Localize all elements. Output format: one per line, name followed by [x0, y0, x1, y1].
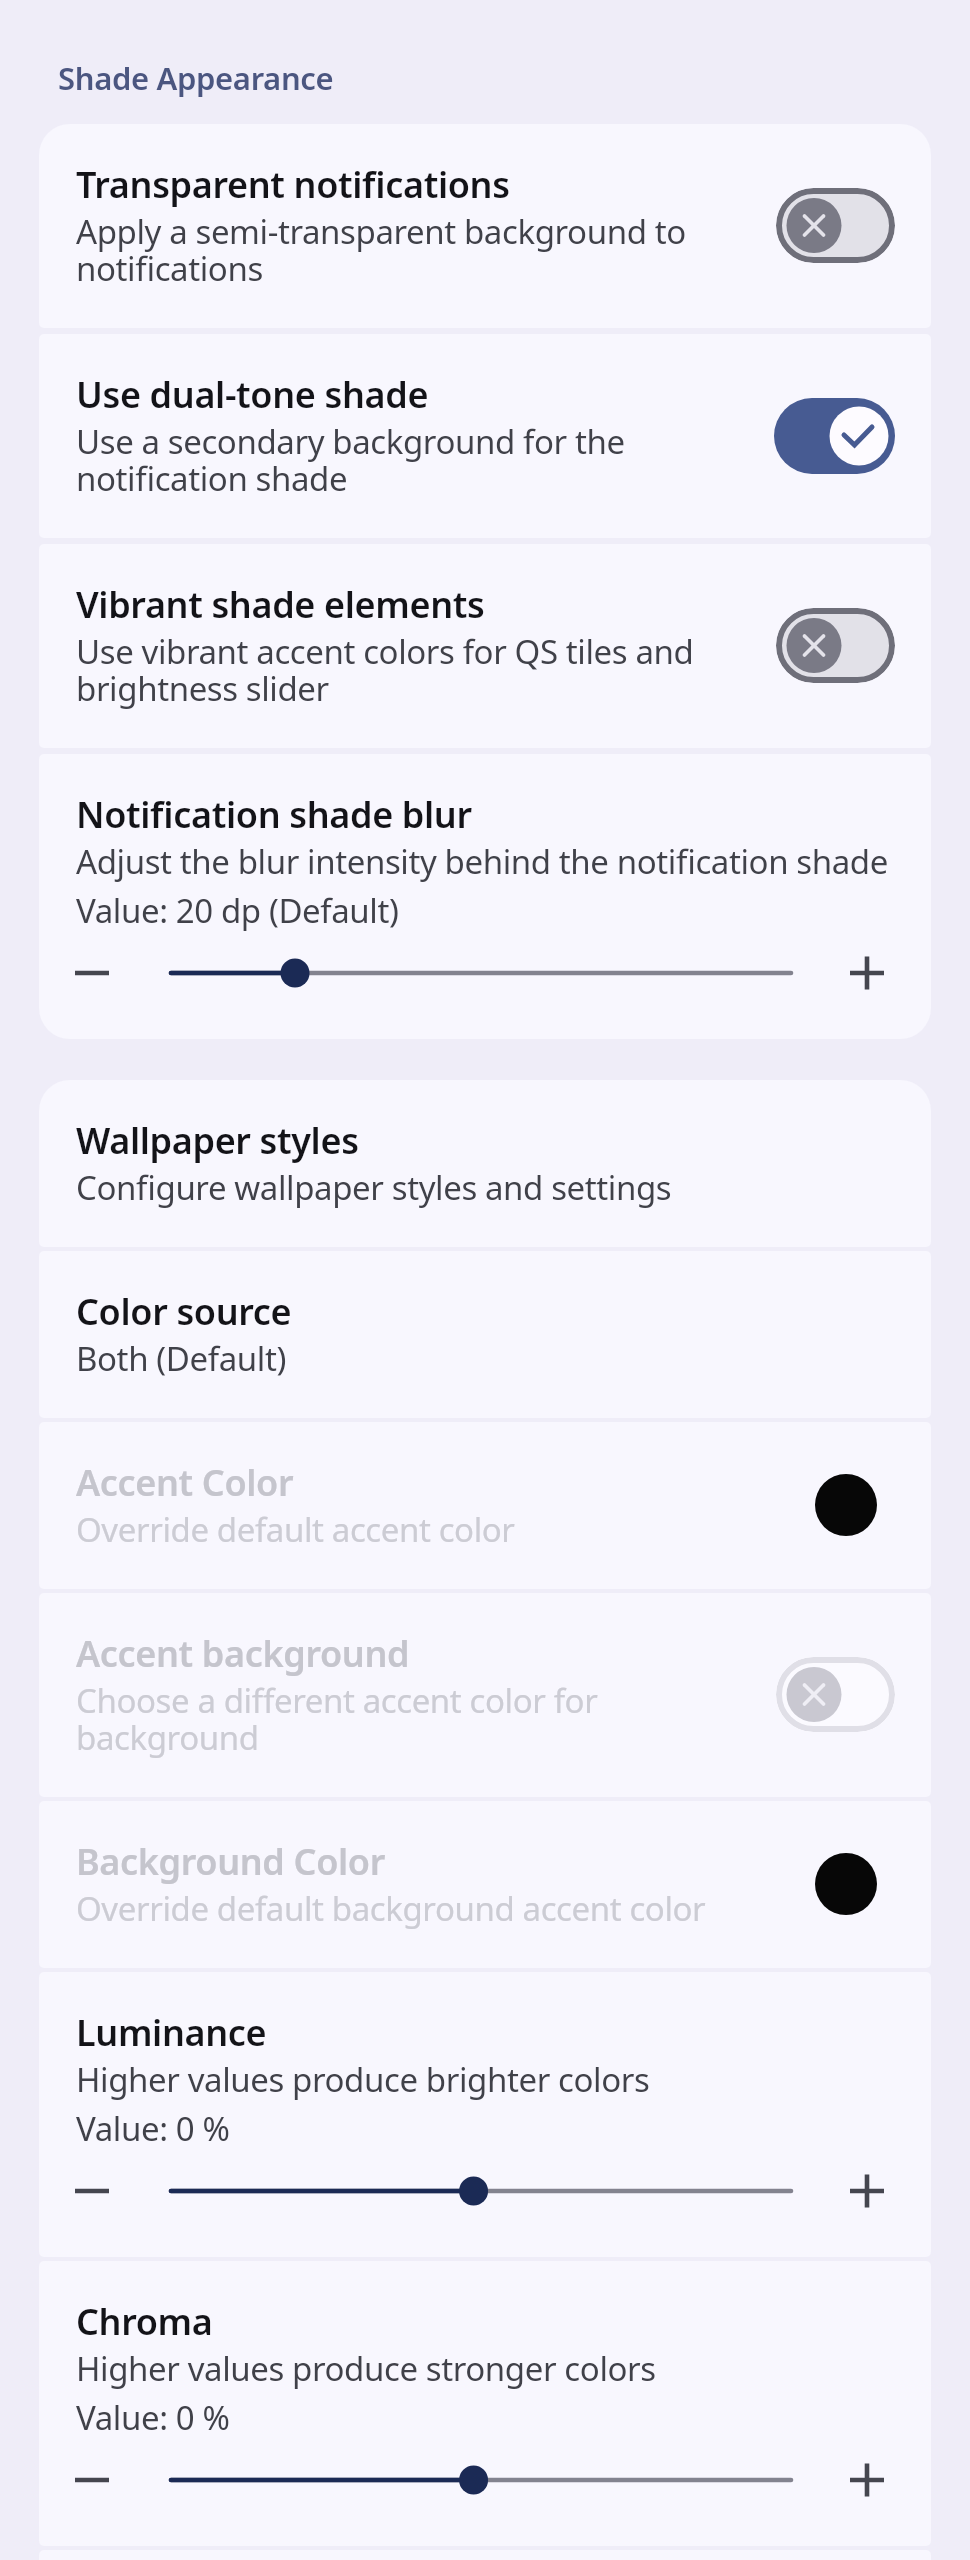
- button[interactable]: Increase: [847, 945, 887, 1001]
- staticText: Accent background: [76, 1629, 410, 1678]
- staticText: Transparent notifications: [76, 160, 510, 209]
- button[interactable]: Toggle off: [776, 608, 895, 683]
- staticText: Vibrant shade elements: [76, 580, 485, 629]
- button[interactable]: Wallpaper styles: [39, 1080, 931, 1247]
- staticText: Override default background accent color: [76, 1886, 706, 1931]
- staticText: Higher values produce stronger colors: [76, 2346, 656, 2391]
- button[interactable]: Pick color: [810, 1469, 882, 1541]
- staticText: Chroma: [76, 2297, 213, 2346]
- staticText: Color source: [76, 1287, 292, 1336]
- staticText: Override default accent color: [76, 1507, 515, 1552]
- staticText: Adjust the blur intensity behind the not…: [76, 839, 888, 884]
- staticText: Configure wallpaper styles and settings: [76, 1165, 672, 1210]
- staticText: Use a secondary background for the notif…: [76, 419, 758, 501]
- button[interactable]: Use dual-tone shade: [39, 334, 931, 538]
- button[interactable]: Decrease: [70, 945, 114, 1001]
- button[interactable]: Vibrant shade elements: [39, 544, 931, 748]
- staticText: Notification shade blur: [76, 790, 472, 839]
- staticText: Value: 20 dp (Default): [76, 888, 399, 933]
- staticText: Apply a semi-transparent background to n…: [76, 209, 760, 291]
- staticText: Background Color: [76, 1837, 385, 1886]
- button[interactable]: Decrease: [70, 2163, 114, 2219]
- button[interactable]: Toggle off: [776, 188, 895, 263]
- staticText: Both (Default): [76, 1336, 286, 1381]
- staticText: Use vibrant accent colors for QS tiles a…: [76, 629, 760, 711]
- button[interactable]: Toggle off: [776, 1657, 895, 1732]
- staticText: Wallpaper styles: [76, 1116, 359, 1165]
- staticText: Shade Appearance: [58, 57, 334, 99]
- staticText: Higher values produce brighter colors: [76, 2057, 650, 2102]
- button[interactable]: Accent background: [39, 1593, 931, 1797]
- button[interactable]: Slider: [169, 2452, 793, 2508]
- button[interactable]: Slider: [169, 945, 793, 1001]
- staticText: Accent Color: [76, 1458, 294, 1507]
- button[interactable]: Decrease: [70, 2452, 114, 2508]
- staticText: Choose a different accent color for back…: [76, 1678, 760, 1760]
- button[interactable]: Color source: [39, 1251, 931, 1418]
- staticText: Use dual-tone shade: [76, 370, 429, 419]
- button[interactable]: Background Color: [39, 1801, 931, 1968]
- button[interactable]: Pick color: [810, 1848, 882, 1920]
- staticText: Luminance: [76, 2008, 267, 2057]
- button[interactable]: Increase: [847, 2452, 887, 2508]
- staticText: Value: 0 %: [76, 2395, 230, 2440]
- button[interactable]: Toggle on: [774, 398, 895, 474]
- button[interactable]: Increase: [847, 2163, 887, 2219]
- button[interactable]: Accent Color: [39, 1422, 931, 1589]
- button[interactable]: Slider: [169, 2163, 793, 2219]
- staticText: Value: 0 %: [76, 2106, 230, 2151]
- button[interactable]: Transparent notifications: [39, 124, 931, 328]
